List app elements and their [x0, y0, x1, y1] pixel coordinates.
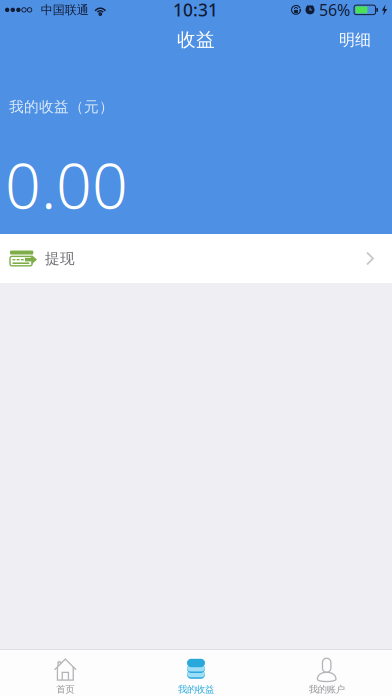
staticText: 中国联通: [41, 2, 89, 17]
staticText: 56%: [319, 0, 350, 20]
staticText: 我的收益: [178, 684, 214, 695]
button[interactable]: 首页: [0, 650, 131, 696]
staticText: 首页: [56, 684, 74, 695]
button[interactable]: 明细: [328, 21, 392, 59]
staticText: 明细: [339, 30, 371, 50]
staticText: 提现: [45, 249, 75, 267]
staticText: 10:31: [173, 0, 218, 21]
button[interactable]: 提现: [0, 234, 392, 283]
button[interactable]: 我的账户: [261, 650, 392, 696]
staticText: 0.00: [5, 143, 128, 226]
button[interactable]: 我的收益: [131, 650, 261, 696]
staticText: 我的收益（元）: [9, 98, 114, 116]
staticText: 收益: [177, 28, 215, 51]
staticText: 我的账户: [309, 684, 345, 695]
